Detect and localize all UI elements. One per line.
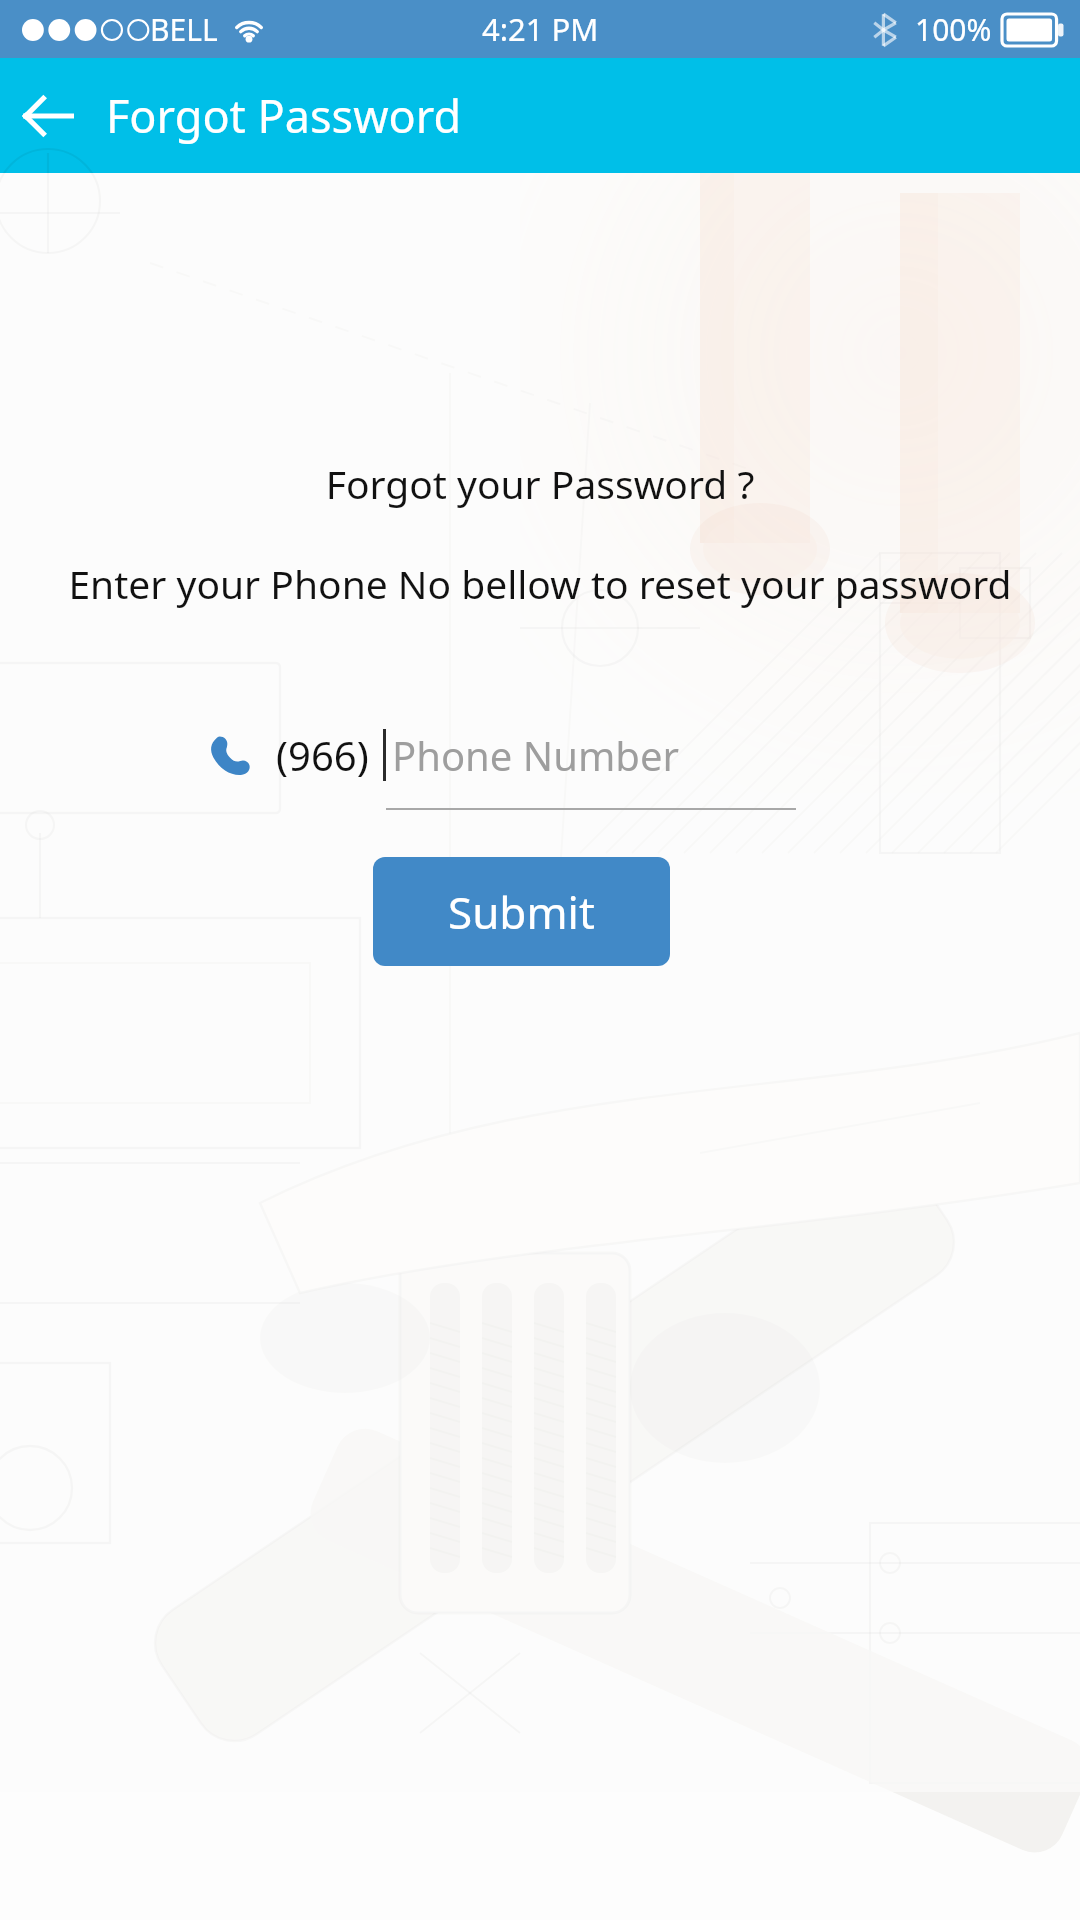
staticText: BELL: [150, 9, 218, 50]
staticText: Enter your Phone No bellow to reset your…: [10, 557, 1070, 610]
staticText: Forgot Password: [106, 85, 462, 146]
staticText: 4:21 PM: [482, 8, 599, 50]
staticText: 100%: [915, 9, 992, 50]
staticText: (966): [276, 728, 369, 782]
button[interactable]: Submit: [373, 857, 670, 966]
button[interactable]: Back: [12, 80, 84, 152]
staticText: Forgot your Password ?: [0, 457, 1080, 510]
staticText: Submit: [448, 882, 595, 942]
staticText: Phone Number: [392, 728, 679, 782]
